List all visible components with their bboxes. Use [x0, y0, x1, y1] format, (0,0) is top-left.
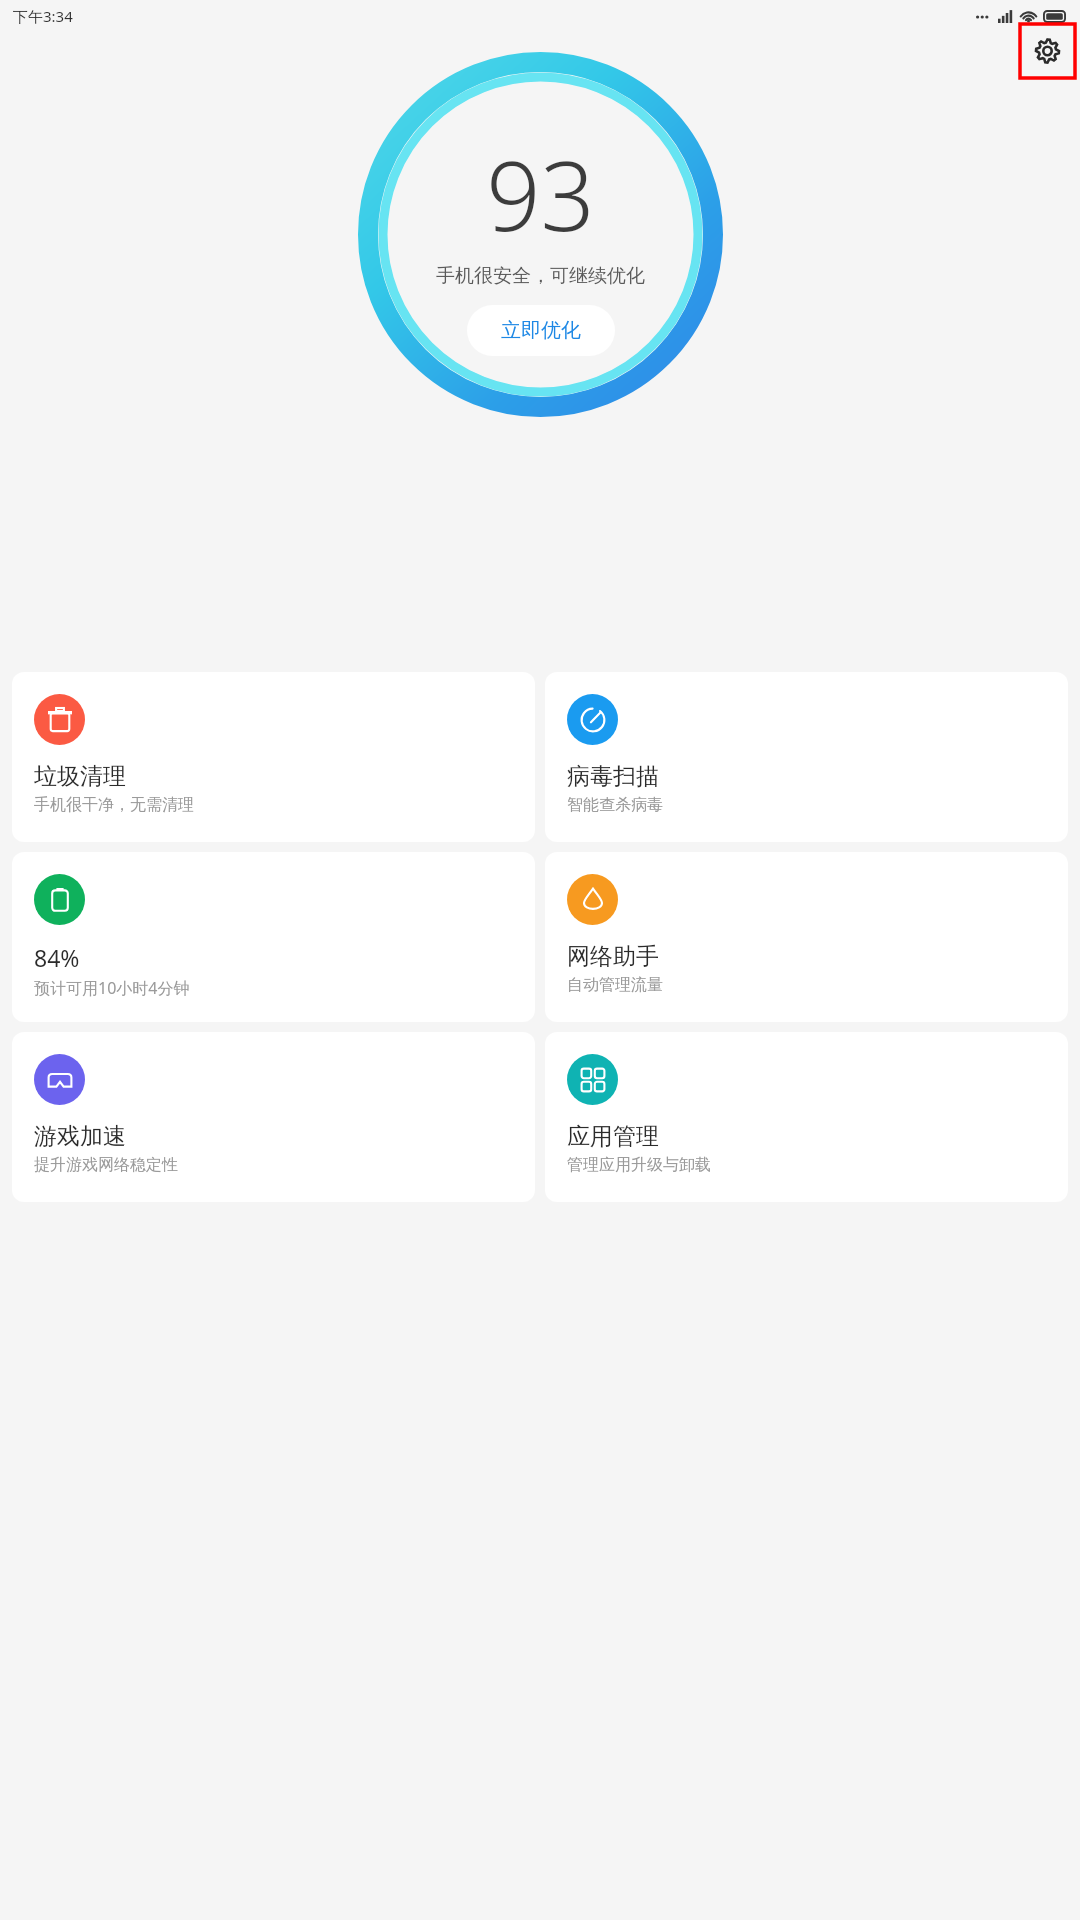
staticText: 93 [486, 129, 595, 258]
staticText: 下午3:34 [13, 6, 73, 26]
staticText: 手机很安全，可继续优化 [436, 264, 645, 288]
staticText: 网络助手 [567, 942, 659, 971]
staticText: 手机很干净，无需清理 [34, 795, 194, 815]
staticText: 病毒扫描 [567, 762, 659, 791]
button[interactable]: 立即优化 [467, 305, 615, 356]
staticText: 管理应用升级与卸载 [567, 1155, 711, 1175]
button[interactable]: 病毒扫描 [545, 672, 1068, 842]
staticText: 立即优化 [501, 318, 581, 343]
button[interactable]: 应用管理 [545, 1032, 1068, 1202]
button[interactable]: 84% [12, 852, 535, 1022]
staticText: 游戏加速 [34, 1122, 126, 1151]
staticText: 智能查杀病毒 [567, 795, 663, 815]
button[interactable]: 垃圾清理 [12, 672, 535, 842]
staticText: 提升游戏网络稳定性 [34, 1155, 178, 1175]
staticText: 自动管理流量 [567, 975, 663, 995]
button[interactable]: 游戏加速 [12, 1032, 535, 1202]
staticText: 应用管理 [567, 1122, 659, 1151]
button[interactable]: Settings [1020, 24, 1075, 78]
staticText: 84% [34, 942, 80, 973]
button[interactable]: 网络助手 [545, 852, 1068, 1022]
staticText: 预计可用10小时4分钟 [34, 977, 190, 999]
staticText: 垃圾清理 [34, 762, 126, 791]
